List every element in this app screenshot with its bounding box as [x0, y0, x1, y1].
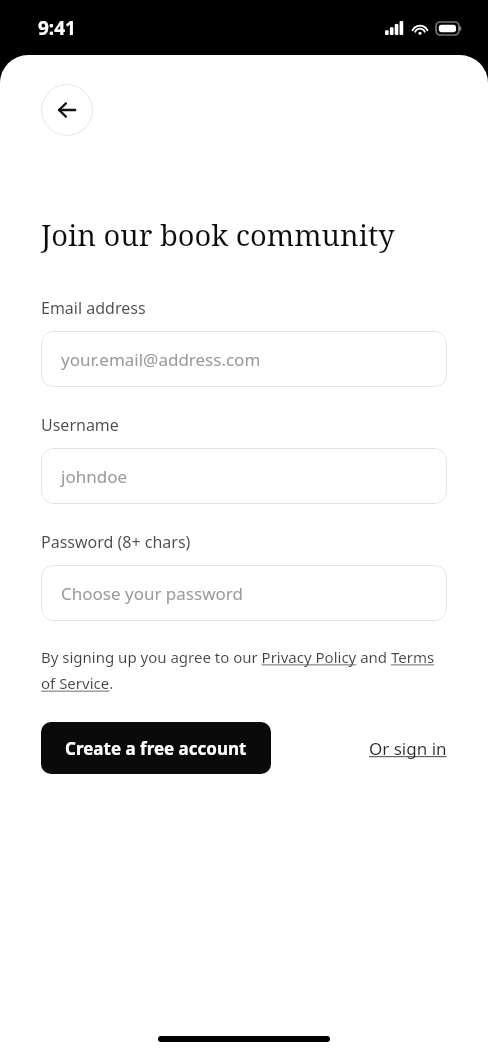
staticText: Email address [41, 297, 146, 319]
button[interactable]: johndoe [41, 448, 447, 504]
staticText: Or sign in [369, 737, 447, 760]
staticText: Password (8+ chars) [41, 531, 191, 553]
staticText: Join our book community [41, 215, 395, 254]
staticText: Username [41, 414, 119, 436]
staticText: johndoe [61, 465, 128, 488]
button[interactable]: Back [41, 84, 93, 136]
button[interactable]: Create a free account [41, 722, 271, 774]
staticText: By signing up you agree to our Privacy P… [41, 647, 447, 694]
staticText: Create a free account [65, 737, 247, 760]
staticText: your.email@address.com [61, 348, 261, 371]
button[interactable]: Choose your password [41, 565, 447, 621]
staticText: Choose your password [61, 582, 243, 605]
button[interactable]: your.email@address.com [41, 331, 447, 387]
button[interactable]: Or sign in [369, 729, 447, 768]
staticText: 9:41 [38, 15, 76, 41]
